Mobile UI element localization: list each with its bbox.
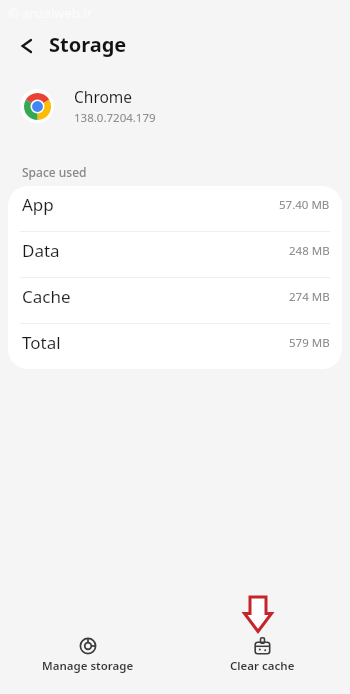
staticText: 579 MB xyxy=(289,335,330,351)
staticText: Clear cache xyxy=(230,658,295,674)
staticText: Chrome xyxy=(74,86,133,107)
staticText: Storage xyxy=(49,31,127,58)
button[interactable]: Data xyxy=(8,232,342,277)
staticText: Cache xyxy=(22,285,71,308)
button[interactable]: Manage storage xyxy=(38,633,138,678)
button[interactable]: Total xyxy=(8,324,342,369)
staticText: 274 MB xyxy=(289,289,330,305)
staticText: Manage storage xyxy=(42,658,134,674)
staticText: Total xyxy=(22,331,61,354)
staticText: 248 MB xyxy=(289,243,330,259)
staticText: App xyxy=(22,193,54,216)
button[interactable]: Cache xyxy=(8,278,342,323)
staticText: 138.0.7204.179 xyxy=(74,110,156,126)
staticText: Data xyxy=(22,239,60,262)
button[interactable]: Storage xyxy=(0,26,350,66)
button[interactable] xyxy=(21,39,32,53)
staticText: Space used xyxy=(22,164,87,180)
button[interactable]: App xyxy=(8,186,342,231)
staticText: 57.40 MB xyxy=(279,197,330,213)
button[interactable]: Clear cache xyxy=(226,633,299,678)
button[interactable]: Chrome xyxy=(20,86,350,126)
